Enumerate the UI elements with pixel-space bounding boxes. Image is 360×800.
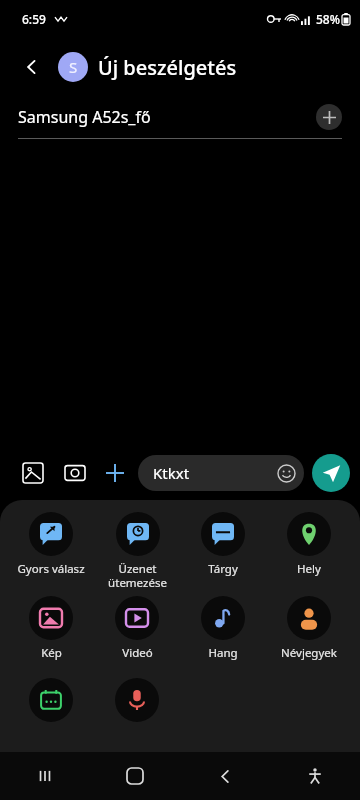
- staticText: Samsung A52s_fő: [18, 106, 316, 128]
- button[interactable]: Üzenet ütemezése: [106, 512, 169, 596]
- button[interactable]: Recents: [0, 752, 90, 800]
- button[interactable]: S: [58, 52, 88, 82]
- button[interactable]: Kép: [27, 596, 75, 678]
- button[interactable]: Ktkxt: [138, 455, 304, 491]
- staticText: Hang: [208, 645, 238, 661]
- button[interactable]: cal: [27, 678, 75, 738]
- staticText: Névjegyek: [281, 645, 337, 661]
- button[interactable]: Home: [90, 752, 180, 800]
- button[interactable]: Add recipient: [316, 104, 342, 130]
- button[interactable]: Camera: [60, 458, 90, 488]
- staticText: 58%: [316, 11, 340, 27]
- button[interactable]: Gyors válasz: [15, 512, 87, 596]
- button[interactable]: More options: [100, 458, 130, 488]
- staticText: Új beszélgetés: [98, 54, 237, 81]
- button[interactable]: mic: [113, 678, 161, 738]
- button[interactable]: Back: [180, 752, 270, 800]
- button[interactable]: Accessibility: [270, 752, 360, 800]
- button[interactable]: Hely: [285, 512, 333, 596]
- button[interactable]: Tárgy: [199, 512, 247, 596]
- button[interactable]: Hang: [199, 596, 247, 678]
- button[interactable]: Send: [312, 454, 350, 492]
- button[interactable]: Back: [12, 47, 52, 87]
- button[interactable]: Gallery: [18, 458, 48, 488]
- button[interactable]: Videó: [113, 596, 161, 678]
- staticText: Videó: [122, 645, 153, 661]
- staticText: Tárgy: [208, 561, 238, 577]
- staticText: Üzenet ütemezése: [108, 561, 167, 590]
- staticText: 6:59: [22, 11, 46, 27]
- staticText: Ktkxt: [153, 463, 277, 483]
- button[interactable]: Névjegyek: [279, 596, 339, 678]
- staticText: Kép: [41, 645, 62, 661]
- staticText: Hely: [297, 561, 321, 577]
- staticText: Gyors válasz: [17, 561, 85, 577]
- staticText: S: [69, 57, 78, 77]
